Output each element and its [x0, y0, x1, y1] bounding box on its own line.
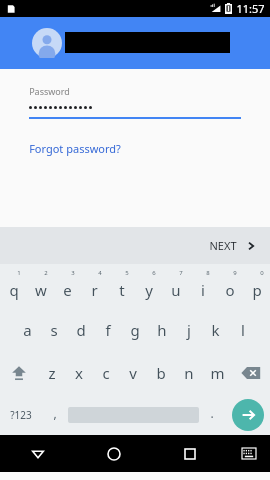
staticText: p [252, 280, 262, 300]
staticText: m [210, 363, 225, 383]
button[interactable]: 0 [243, 264, 270, 308]
button[interactable]: Home [76, 435, 152, 472]
button[interactable]: v [119, 351, 147, 394]
staticText: t [119, 280, 125, 300]
staticText: q [9, 280, 19, 300]
staticText: s [50, 320, 58, 340]
staticText: a [23, 320, 32, 340]
button[interactable]: 2 [27, 264, 54, 308]
staticText: 0 [260, 269, 264, 277]
staticText: j [187, 320, 191, 340]
staticText: k [211, 320, 220, 340]
button[interactable]: Switch keyboard [228, 435, 270, 472]
button[interactable]: Recent apps [152, 435, 228, 472]
staticText: i [201, 280, 205, 300]
button[interactable]: 4 [81, 264, 108, 308]
staticText: w [35, 280, 47, 300]
button[interactable]: k [202, 308, 229, 351]
button[interactable]: c [92, 351, 119, 394]
staticText: 3 [71, 269, 75, 277]
button[interactable]: n [175, 351, 203, 394]
staticText: 11:57 [236, 1, 265, 16]
button[interactable]: 6 [135, 264, 162, 308]
button[interactable]: d [67, 308, 94, 351]
staticText: r [91, 280, 98, 300]
button[interactable]: 3 [54, 264, 81, 308]
button[interactable]: Backspace [231, 351, 270, 394]
staticText: d [76, 320, 86, 340]
staticText: 1 [17, 269, 21, 277]
button[interactable]: . [199, 394, 225, 435]
staticText: 7 [179, 269, 183, 277]
staticText: 8 [206, 269, 210, 277]
staticText: NEXT [209, 238, 237, 253]
button[interactable]: 8 [189, 264, 216, 308]
staticText: g [130, 320, 140, 340]
staticText: , [53, 405, 57, 421]
button[interactable]: s [40, 308, 67, 351]
staticText: n [184, 363, 194, 383]
staticText: 5 [125, 269, 129, 277]
button[interactable]: 5 [108, 264, 135, 308]
staticText: y [145, 280, 153, 300]
staticText: e [63, 280, 72, 300]
staticText: h [157, 320, 167, 340]
staticText: u [171, 280, 181, 300]
button[interactable]: a [14, 308, 40, 351]
button[interactable]: 1 [0, 264, 27, 308]
staticText: b [156, 363, 166, 383]
staticText: l [241, 320, 245, 340]
button[interactable]: x [65, 351, 92, 394]
staticText: 4 [98, 269, 102, 277]
staticText: x [75, 363, 83, 383]
staticText: 9 [233, 269, 237, 277]
staticText: f [105, 320, 111, 340]
staticText: z [48, 363, 56, 383]
button[interactable]: ?123 [0, 394, 42, 435]
button[interactable]: f [94, 308, 121, 351]
button[interactable]: b [147, 351, 175, 394]
button[interactable] [68, 394, 199, 435]
button[interactable]: m [203, 351, 231, 394]
button[interactable]: g [121, 308, 148, 351]
button[interactable]: Forgot password? [29, 141, 121, 156]
staticText: o [225, 280, 235, 300]
button[interactable]: h [148, 308, 175, 351]
button[interactable]: Enter [225, 394, 270, 435]
button[interactable]: l [229, 308, 256, 351]
button[interactable]: 7 [162, 264, 189, 308]
button[interactable]: Back [0, 435, 76, 472]
button[interactable]: Shift [0, 351, 38, 394]
staticText: 2 [44, 269, 48, 277]
staticText: Password [29, 85, 70, 97]
staticText: v [129, 363, 137, 383]
staticText: . [210, 405, 214, 421]
staticText: Forgot password? [29, 141, 121, 156]
button[interactable]: NEXT [195, 230, 270, 261]
staticText: c [102, 363, 110, 383]
button[interactable]: , [42, 394, 68, 435]
button[interactable]: j [175, 308, 202, 351]
button[interactable]: 9 [216, 264, 243, 308]
button[interactable]: z [38, 351, 65, 394]
staticText: ?123 [10, 408, 32, 422]
staticText: 6 [152, 269, 156, 277]
